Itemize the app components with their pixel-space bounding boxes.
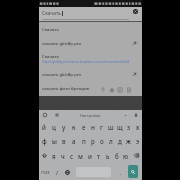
button[interactable]: й (39, 120, 49, 134)
button[interactable]: Emoji (41, 111, 49, 119)
staticText: ж (126, 137, 131, 145)
button[interactable]: ф (39, 134, 49, 148)
button[interactable]: а (69, 134, 79, 148)
button[interactable]: скачать фото брендов (39, 81, 142, 95)
staticText: ь (106, 152, 110, 160)
button[interactable]: ю (121, 148, 130, 163)
button[interactable]: ь (103, 148, 112, 163)
staticText: ю (123, 152, 129, 160)
button[interactable]: Change keyboard language (62, 163, 73, 180)
staticText: Скачать (42, 26, 59, 32)
button[interactable]: г (97, 120, 106, 134)
staticText: з (127, 123, 131, 131)
staticText: . (120, 169, 122, 176)
button[interactable]: Clear query (131, 7, 140, 16)
staticText: Скачать (42, 53, 59, 59)
staticText: б (115, 152, 119, 160)
staticText: о (100, 137, 104, 145)
staticText: и (88, 152, 92, 160)
button[interactable]: и (85, 148, 94, 163)
button[interactable]: скачать gktdfp.pro (39, 36, 142, 50)
staticText: н (91, 123, 95, 131)
staticText: я (52, 152, 56, 160)
button[interactable]: Home (108, 86, 116, 94)
button[interactable]: Tabs (116, 86, 124, 94)
button[interactable]: т (94, 148, 103, 163)
staticText: ш (108, 123, 114, 131)
staticText: а (72, 137, 76, 145)
button[interactable]: с (67, 148, 76, 163)
button[interactable]: о (97, 134, 106, 148)
staticText: у (62, 123, 66, 131)
button[interactable]: Keyboard options (53, 111, 61, 119)
button[interactable]: э (133, 134, 142, 148)
staticText: д (118, 137, 122, 145)
button[interactable]: Скачать (39, 50, 142, 67)
staticText: ы (52, 137, 57, 145)
button[interactable]: к (69, 120, 79, 134)
button[interactable]: б (112, 148, 121, 163)
button[interactable]: Скачать (39, 22, 142, 36)
staticText: э (136, 137, 140, 145)
button[interactable]: д (115, 134, 124, 148)
button[interactable]: ж (124, 134, 133, 148)
button[interactable]: я (50, 148, 58, 163)
button[interactable]: скачать gktdfp.pro (39, 67, 142, 81)
staticText: с (70, 152, 74, 160)
button[interactable]: Insert suggestion (131, 40, 138, 47)
staticText: в (62, 137, 66, 145)
staticText: м (78, 152, 83, 160)
button[interactable]: х (133, 120, 142, 134)
staticText: / (56, 169, 58, 176)
staticText: р (91, 137, 95, 145)
staticText: ?123 (41, 170, 50, 175)
staticText: https://gktdfp.pro/skachat-besplatno-na-… (42, 60, 130, 64)
button[interactable]: ы (49, 134, 59, 148)
button[interactable]: ?123 (39, 163, 52, 180)
button[interactable]: Search (128, 165, 138, 178)
button[interactable]: Shift (39, 148, 50, 163)
staticText: к (72, 123, 76, 131)
staticText: ч (61, 152, 65, 160)
staticText: скачать gktdfp.pro (42, 71, 82, 77)
button[interactable]: щ (115, 120, 124, 134)
button[interactable]: п (79, 134, 88, 148)
button[interactable]: р (88, 134, 97, 148)
button[interactable]: ц (49, 120, 59, 134)
button[interactable]: More suggestions (122, 112, 129, 119)
staticText: Настройки (80, 113, 101, 118)
button[interactable]: Backspace (130, 148, 142, 163)
staticText: скачать фото брендов (42, 85, 90, 91)
staticText: т (97, 152, 100, 160)
button[interactable]: Voice input (132, 111, 140, 119)
button[interactable]: ш (106, 120, 115, 134)
staticText: г (100, 123, 103, 131)
staticText: скачать gktdfp.pro (42, 40, 82, 46)
button[interactable]: у (59, 120, 69, 134)
button[interactable]: н (88, 120, 97, 134)
button[interactable]: Share (99, 86, 107, 94)
button[interactable]: More options (125, 86, 133, 94)
button[interactable]: / (52, 163, 62, 180)
button[interactable]: з (124, 120, 133, 134)
button[interactable]: ч (58, 148, 67, 163)
staticText: х (136, 123, 140, 131)
staticText: й (42, 123, 46, 131)
button[interactable]: Скачать (39, 7, 142, 22)
staticText: ф (42, 137, 47, 145)
staticText: Скачать (42, 10, 61, 17)
button[interactable]: Insert suggestion (131, 71, 138, 78)
staticText: п (82, 137, 86, 145)
staticText: ц (52, 123, 56, 131)
staticText: щ (117, 123, 123, 131)
button[interactable]: в (59, 134, 69, 148)
button[interactable]: л (106, 134, 115, 148)
staticText: е (82, 123, 86, 131)
button[interactable]: е (79, 120, 88, 134)
button[interactable]: м (76, 148, 85, 163)
